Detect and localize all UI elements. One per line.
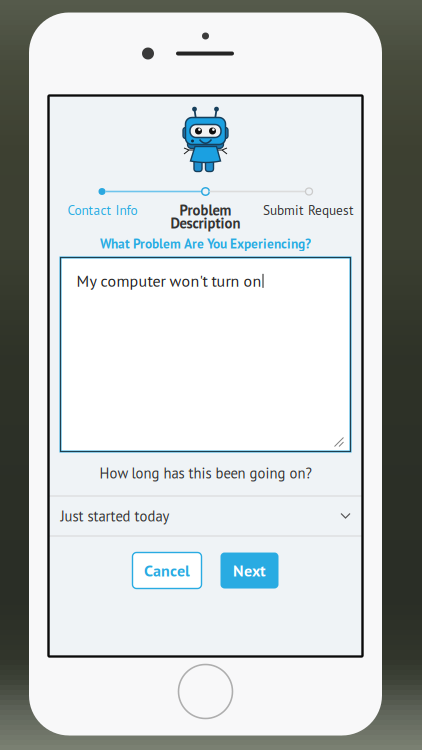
staticText: Cancel	[144, 560, 190, 581]
staticText: Next	[233, 560, 266, 581]
staticText: Just started today	[60, 506, 169, 525]
staticText: Description	[170, 213, 240, 232]
staticText: Contact Info	[67, 201, 137, 219]
staticText: What Problem Are You Experiencing?	[100, 235, 311, 252]
staticText: Problem	[179, 200, 231, 219]
staticText: How long has this been going on?	[99, 463, 311, 482]
staticText: Submit Request	[263, 201, 354, 219]
button[interactable]: Just started today	[48, 496, 362, 535]
button[interactable]: Cancel	[132, 552, 201, 588]
staticText: My computer won't turn on	[76, 270, 261, 291]
button[interactable]: Next	[220, 552, 278, 588]
